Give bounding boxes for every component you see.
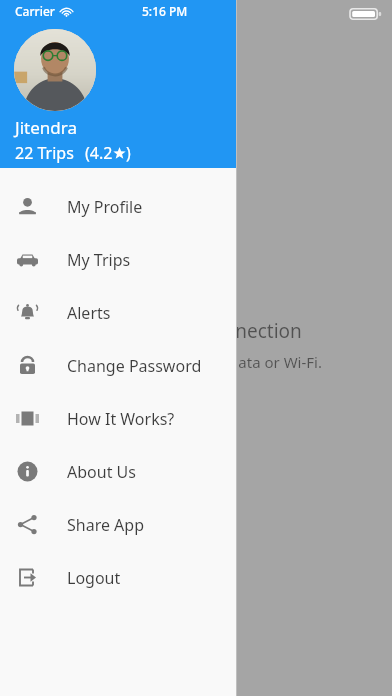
staticText: About Us — [67, 461, 136, 483]
staticText: My Profile — [67, 196, 143, 218]
button[interactable]: Logout — [0, 551, 236, 604]
button[interactable]: Change Password — [0, 339, 236, 392]
staticText: Share App — [67, 514, 145, 536]
staticText: Alerts — [67, 302, 111, 324]
staticText: Carrier — [15, 3, 55, 19]
button[interactable] — [14, 29, 96, 111]
button[interactable]: My Trips — [0, 233, 236, 286]
staticText: Logout — [67, 567, 121, 589]
staticText: ) — [126, 142, 131, 164]
button[interactable]: Alerts — [0, 286, 236, 339]
staticText: No Internet Connection — [91, 318, 302, 344]
staticText: How It Works? — [67, 408, 175, 430]
button[interactable]: Share App — [0, 498, 236, 551]
staticText: 5:16 PM — [142, 3, 188, 19]
staticText: Please turn on mobile data or Wi-Fi. — [71, 352, 322, 372]
staticText: My Trips — [67, 249, 131, 271]
button[interactable]: About Us — [0, 445, 236, 498]
staticText: Jitendra — [15, 116, 77, 139]
button[interactable]: My Profile — [0, 180, 236, 233]
staticText: (4.2 — [85, 142, 113, 164]
button[interactable]: How It Works? — [0, 392, 236, 445]
other: Battery — [350, 4, 384, 24]
staticText: 22 Trips — [15, 142, 74, 164]
staticText: Change Password — [67, 355, 202, 377]
